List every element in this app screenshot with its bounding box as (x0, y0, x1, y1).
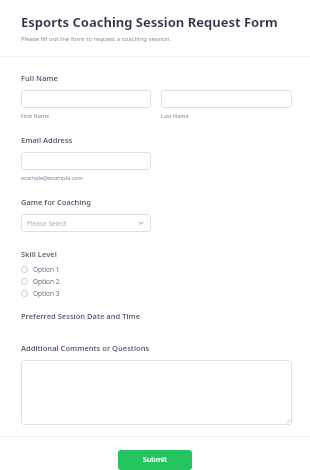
staticText: Email Address (21, 135, 73, 145)
staticText: Last Name (161, 112, 189, 119)
button[interactable] (161, 90, 292, 108)
button[interactable]: Option 1 (0, 263, 310, 275)
button[interactable]: Option 2 (0, 275, 310, 287)
staticText: Game for Coaching (21, 197, 91, 207)
staticText: Option 1 (33, 265, 60, 274)
button[interactable]: Option 3 (0, 287, 310, 299)
button[interactable]: Submit (118, 450, 192, 470)
button[interactable]: Please Select (21, 214, 151, 232)
staticText: Option 2 (33, 277, 60, 286)
staticText: Skill Level (21, 249, 57, 259)
staticText: Preferred Session Date and Time (21, 311, 141, 321)
staticText: Please Select (27, 219, 67, 228)
button[interactable] (21, 360, 292, 425)
staticText: Submit (143, 455, 167, 465)
staticText: Option 3 (33, 289, 60, 298)
staticText: Please fill out the form to request a co… (21, 35, 172, 43)
button[interactable] (21, 90, 151, 108)
staticText: Esports Coaching Session Request Form (21, 13, 278, 31)
staticText: Additional Comments or Questions (21, 343, 150, 353)
staticText: First Name (21, 112, 161, 119)
button[interactable] (21, 152, 151, 170)
staticText: example@example.com (21, 174, 83, 181)
staticText: Full Name (21, 73, 58, 83)
